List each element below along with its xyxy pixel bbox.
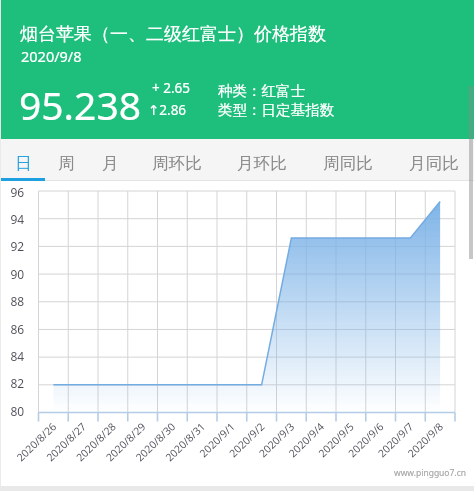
- button[interactable]: 月: [88, 139, 132, 181]
- staticText: 类型：日定基指数: [218, 101, 334, 119]
- staticText: 日: [15, 153, 32, 174]
- button[interactable]: 周: [45, 139, 88, 181]
- staticText: 烟台苹果（一、二级红富士）价格指数: [20, 23, 326, 46]
- staticText: 种类：红富士: [218, 82, 305, 100]
- staticText: 周: [58, 153, 75, 174]
- button[interactable]: 周同比: [310, 139, 385, 181]
- button[interactable]: 周环比: [132, 139, 221, 181]
- staticText: 周同比: [323, 153, 373, 174]
- button[interactable]: 日: [0, 139, 45, 181]
- staticText: 月同比: [409, 153, 459, 174]
- staticText: 95.238: [19, 78, 141, 131]
- staticText: ↑2.86: [148, 101, 187, 119]
- staticText: 周环比: [152, 153, 202, 174]
- button[interactable]: 月同比: [386, 139, 474, 181]
- button[interactable]: 月环比: [224, 139, 300, 181]
- staticText: 月环比: [237, 153, 287, 174]
- staticText: 2020/9/8: [21, 46, 82, 66]
- staticText: + 2.65: [152, 79, 191, 97]
- staticText: 月: [102, 153, 119, 174]
